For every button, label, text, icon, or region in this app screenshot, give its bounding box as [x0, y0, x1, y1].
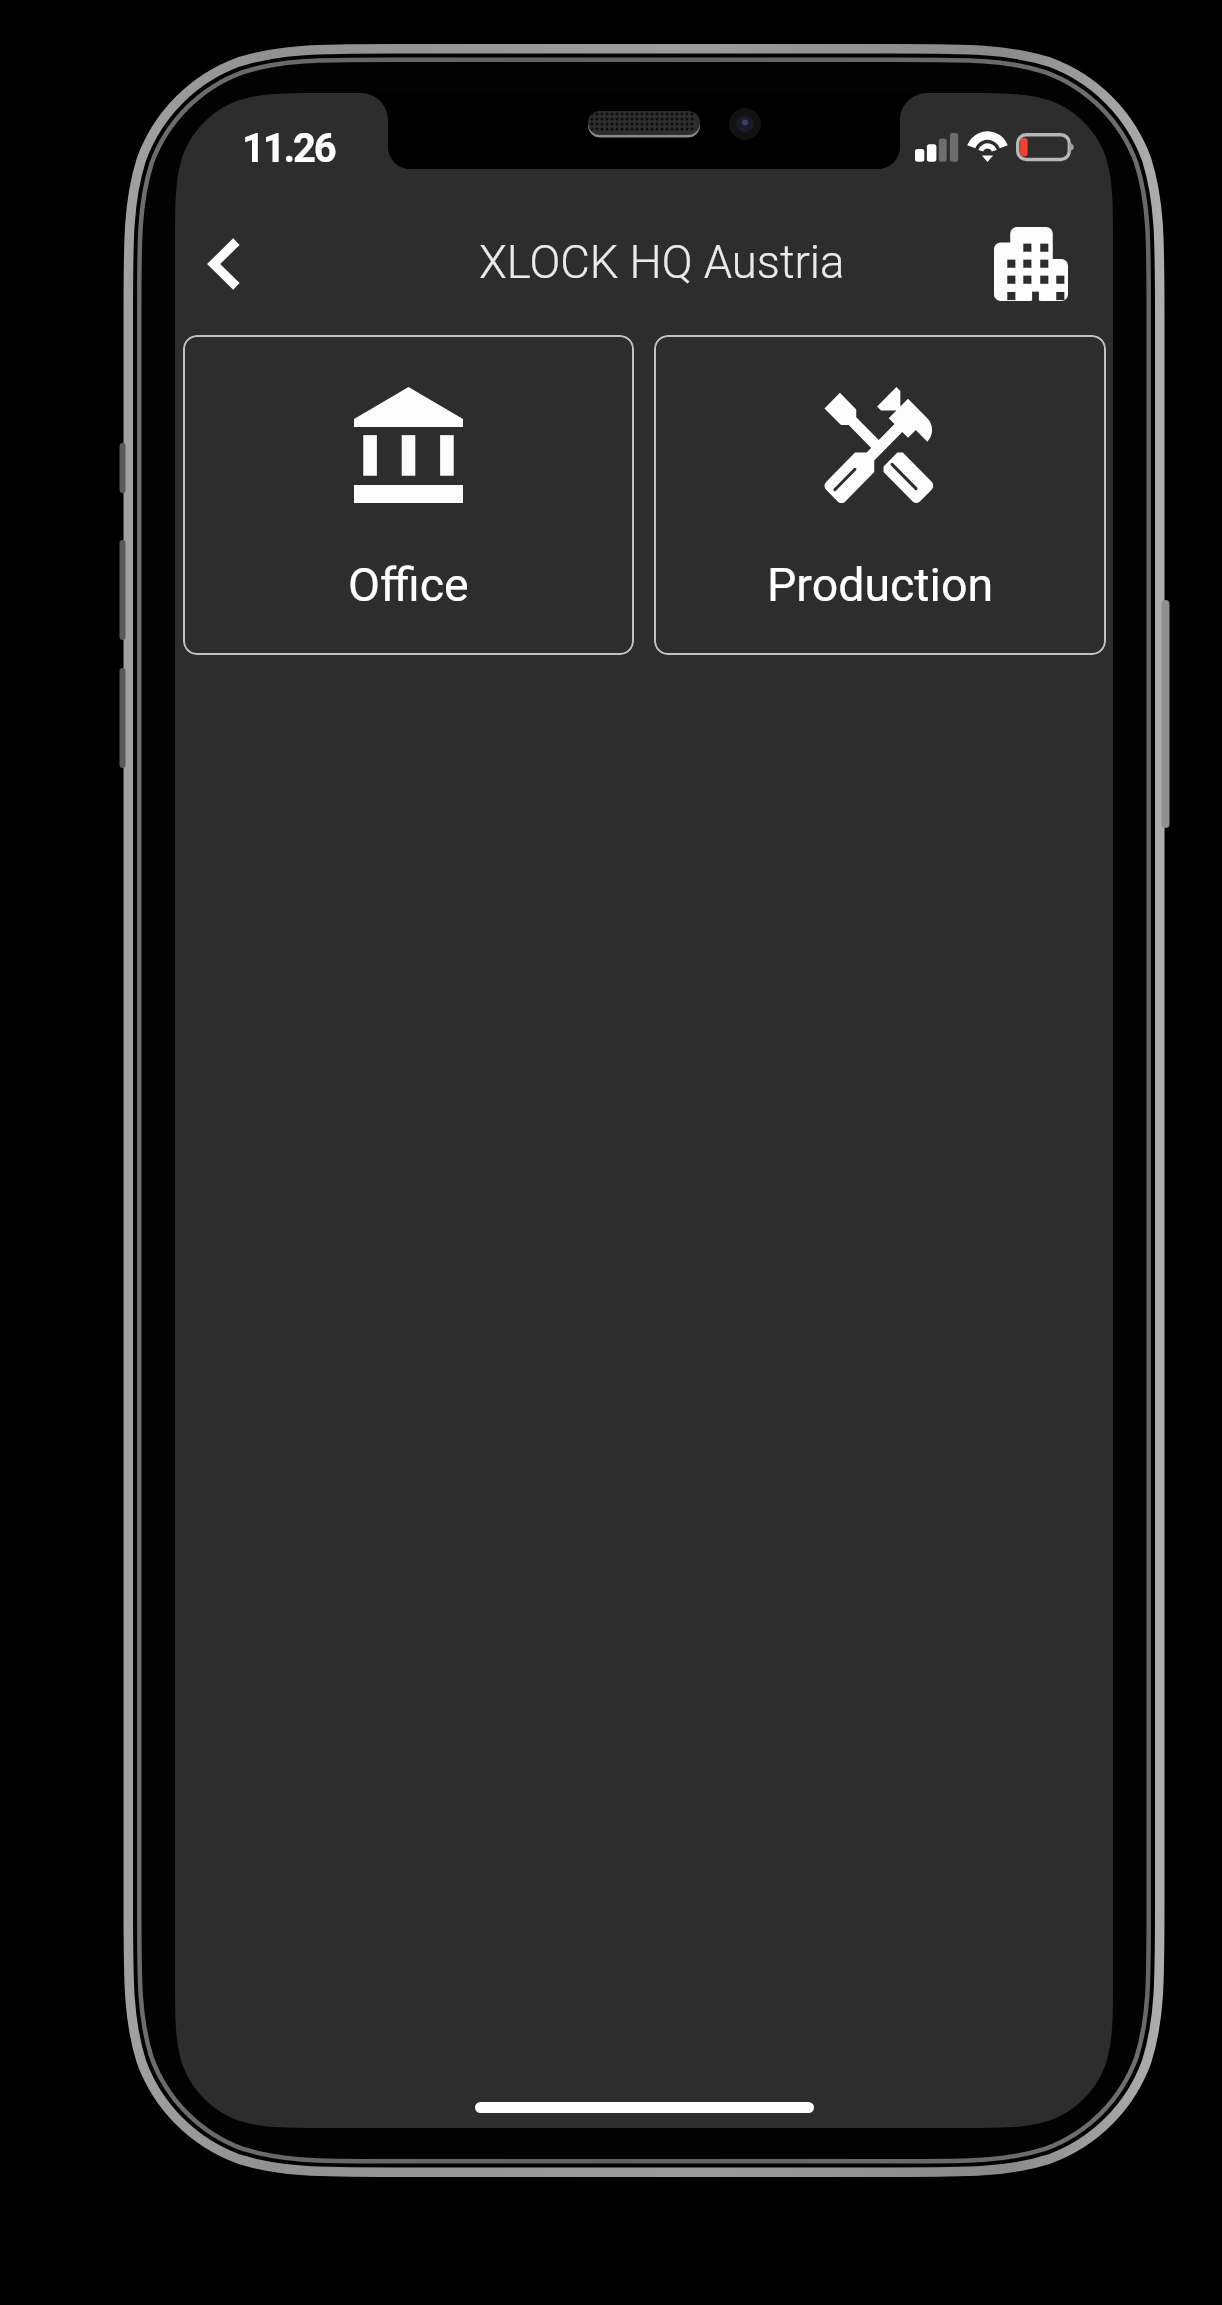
staticText: Office [348, 558, 469, 612]
button[interactable]: Production [654, 335, 1106, 655]
button[interactable]: Back [184, 226, 264, 302]
button[interactable]: Buildings [990, 223, 1072, 305]
staticText: XLOCK HQ Austria [479, 236, 845, 289]
button[interactable]: Office [183, 335, 634, 655]
staticText: 11.26 [242, 125, 335, 172]
staticText: Production [767, 558, 994, 612]
